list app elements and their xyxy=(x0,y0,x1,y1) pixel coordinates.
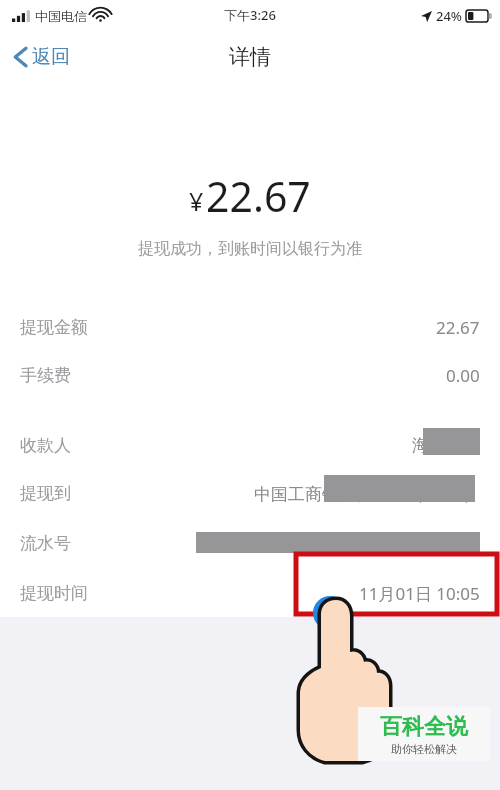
staticText: 收款人 xyxy=(20,435,71,456)
staticText: 助你轻松解决 xyxy=(391,742,457,756)
staticText: 详情 xyxy=(229,44,271,70)
staticText: 201811010000000000000000 xyxy=(246,532,480,555)
staticText: 百科全说 xyxy=(380,713,468,741)
staticText: 提现成功，到账时间以银行为准 xyxy=(138,239,362,259)
staticText: 11月01日 10:05 xyxy=(359,582,480,605)
staticText: 中国电信 xyxy=(35,8,87,24)
staticText: 下午3:26 xyxy=(224,6,276,24)
staticText: 0.00 xyxy=(446,364,480,387)
staticText: 提现到 xyxy=(20,483,71,504)
staticText: 中国工商银行储蓄卡（8888） xyxy=(254,482,480,505)
button[interactable]: 返回 xyxy=(0,39,84,75)
staticText: 24% xyxy=(436,7,462,25)
staticText: 提现金额 xyxy=(20,317,88,338)
staticText: 提现时间 xyxy=(20,583,88,604)
button[interactable]: 手续费 xyxy=(0,351,500,399)
button[interactable]: 收款人 xyxy=(0,421,500,469)
button[interactable]: 提现金额 xyxy=(0,303,500,351)
staticText: 手续费 xyxy=(20,365,71,386)
staticText: 流水号 xyxy=(20,533,71,554)
button[interactable]: 提现到 xyxy=(0,469,500,517)
staticText: ¥ xyxy=(189,184,204,218)
button[interactable]: 提现时间 xyxy=(0,569,500,617)
button[interactable]: 流水号 xyxy=(0,519,500,567)
staticText: 海阔天空 xyxy=(412,435,480,456)
staticText: 22.67 xyxy=(436,316,480,339)
staticText: 返回 xyxy=(32,45,70,69)
staticText: 22.67 xyxy=(206,168,311,224)
